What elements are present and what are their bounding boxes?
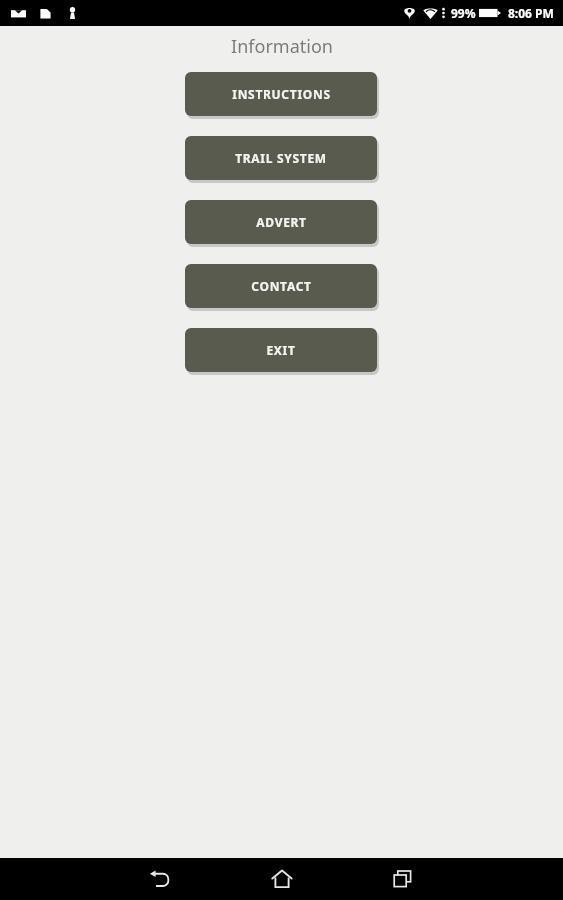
staticText: Information [231, 34, 333, 59]
staticText: INSTRUCTIONS [232, 86, 331, 102]
button[interactable]: TRAIL SYSTEM [185, 136, 379, 183]
staticText: EXIT [266, 342, 296, 358]
button[interactable]: Back [138, 858, 182, 900]
staticText: ADVERT [256, 214, 307, 230]
button[interactable]: INSTRUCTIONS [185, 72, 379, 119]
button[interactable]: ADVERT [185, 200, 379, 247]
staticText: TRAIL SYSTEM [235, 150, 327, 166]
button[interactable]: Recent apps [381, 858, 425, 900]
button[interactable]: EXIT [185, 328, 379, 375]
staticText: 8:06 PM [508, 5, 554, 21]
button[interactable]: CONTACT [185, 264, 379, 311]
staticText: 99% [451, 5, 476, 21]
button[interactable]: Home [260, 858, 304, 900]
staticText: CONTACT [251, 278, 312, 294]
